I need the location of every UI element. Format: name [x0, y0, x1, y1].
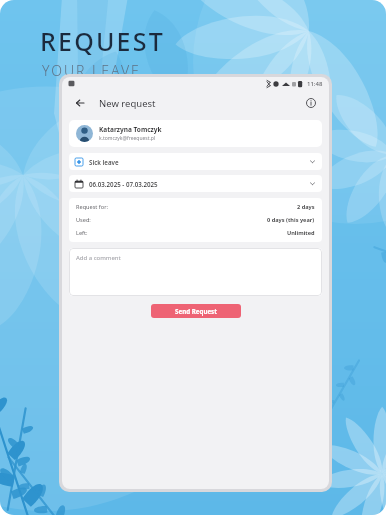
staticText: Unlimited — [287, 229, 315, 237]
staticText: Katarzyna Tomczyk — [99, 125, 162, 134]
button[interactable]: Send Request — [151, 304, 241, 318]
button[interactable]: Back — [71, 94, 89, 112]
staticText: YOUR LEAVE — [42, 61, 141, 80]
staticText: Add a comment — [76, 254, 121, 262]
staticText: Request for: — [76, 203, 108, 211]
staticText: 06.03.2025 - 07.03.2025 — [89, 180, 158, 188]
staticText: Send Request — [175, 307, 217, 315]
button[interactable]: Katarzyna Tomczyk — [69, 120, 322, 147]
button[interactable]: Add a comment — [69, 248, 322, 296]
staticText: 0 days (this year) — [267, 216, 315, 224]
staticText: REQUEST — [40, 24, 165, 58]
staticText: Sick leave — [89, 158, 119, 166]
staticText: 11:48 — [307, 80, 323, 88]
button[interactable]: Sick leave — [69, 153, 322, 170]
staticText: Left: — [76, 229, 88, 237]
staticText: 2 days — [297, 203, 315, 211]
staticText: New request — [99, 97, 156, 110]
button[interactable]: Info — [302, 94, 320, 112]
staticText: Used: — [76, 216, 91, 224]
button[interactable]: 06.03.2025 - 07.03.2025 — [69, 175, 322, 192]
staticText: k.tomczyk@freequest.pl — [99, 135, 156, 142]
